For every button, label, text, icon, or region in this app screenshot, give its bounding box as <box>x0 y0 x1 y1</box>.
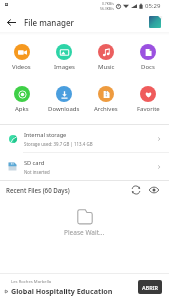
staticText: SD card <box>24 159 45 167</box>
staticText: Music <box>98 63 115 71</box>
staticText: File manager <box>24 17 74 28</box>
button[interactable]: SD card <box>0 153 169 180</box>
staticText: Archives <box>94 105 118 113</box>
button[interactable]: Favorite <box>127 86 169 113</box>
button[interactable]: Docs <box>127 44 169 71</box>
staticText: Favorite <box>137 105 160 113</box>
button[interactable]: Refresh <box>129 183 143 197</box>
button[interactable]: Internal storage <box>0 125 169 152</box>
staticText: Recent Files (60 Days) <box>6 186 70 194</box>
staticText: Images <box>54 63 75 71</box>
staticText: 56.3KB/s <box>100 6 114 11</box>
staticText: Les Roches Marbella <box>11 279 52 285</box>
staticText: Videos <box>12 63 31 71</box>
button[interactable]: Back <box>3 14 19 30</box>
button[interactable]: ABRIR <box>138 280 162 294</box>
button[interactable]: Images <box>43 44 85 71</box>
button[interactable]: Apks <box>0 86 43 113</box>
staticText: Not inserted <box>24 169 50 175</box>
staticText: Internal storage <box>24 131 67 139</box>
staticText: 0.7KB/s <box>102 1 114 6</box>
button[interactable]: Archives <box>85 86 127 113</box>
staticText: Storage used: 39.7 GB | 113.4 GB <box>24 141 93 147</box>
button[interactable]: Downloads <box>43 86 85 113</box>
staticText: Apks <box>15 105 29 113</box>
staticText: Global Hospitality Education <box>11 286 113 296</box>
button[interactable]: Storage analyzer <box>146 13 164 31</box>
staticText: Please Wait... <box>64 228 105 237</box>
staticText: 05:29 <box>145 2 161 10</box>
staticText: ABRIR <box>142 284 159 291</box>
button[interactable]: Music <box>85 44 127 71</box>
button[interactable]: Show hidden files <box>147 183 161 197</box>
button[interactable]: Videos <box>0 44 43 71</box>
staticText: Downloads <box>48 105 80 113</box>
staticText: Docs <box>141 63 155 71</box>
